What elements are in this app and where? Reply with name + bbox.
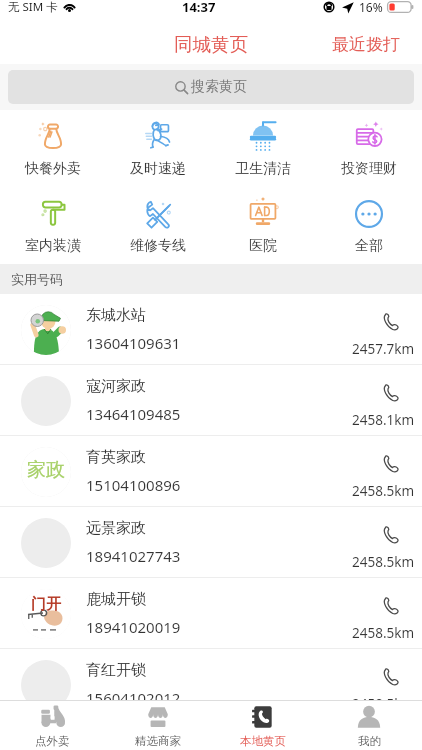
staticText: 室内装潢 [25, 237, 81, 255]
staticText: 无 SIM 卡 [8, 0, 58, 15]
staticText: 门开 [31, 595, 61, 614]
staticText: 实用号码 [11, 271, 63, 287]
staticText: 寇河家政 [86, 377, 146, 396]
staticText: 15604102012 [86, 688, 181, 708]
button[interactable]: 家政 [0, 436, 422, 506]
staticText: 育英家政 [86, 448, 146, 467]
staticText: 卫生清洁 [235, 160, 291, 178]
button[interactable]: 最近拨打 [320, 30, 422, 59]
button[interactable]: Call 东城水站 [350, 304, 422, 358]
button[interactable]: 同城黄页 [166, 31, 256, 58]
button[interactable]: Call 育红开锁 [350, 659, 422, 713]
staticText: 同城黄页 [174, 33, 248, 56]
button[interactable]: 医院 [210, 187, 316, 264]
staticText: 点外卖 [35, 734, 70, 748]
button[interactable]: 精选商家 [105, 701, 210, 750]
staticText: 13604109631 [86, 333, 181, 353]
button[interactable]: 我的 [316, 701, 422, 750]
button[interactable]: 快餐外卖 [0, 110, 105, 187]
staticText: 维修专线 [130, 237, 186, 255]
staticText: 18941027743 [86, 546, 181, 566]
staticText: 远景家政 [86, 519, 146, 538]
button[interactable]: 寇河家政 [0, 365, 422, 435]
staticText: 本地黄页 [240, 734, 286, 748]
button[interactable]: 育红开锁 [0, 649, 422, 719]
staticText: 2458.5km [352, 695, 415, 713]
button[interactable]: 维修专线 [105, 187, 210, 264]
button[interactable]: 点外卖 [0, 701, 105, 750]
button[interactable]: 及时速递 [105, 110, 210, 187]
staticText: 投资理财 [341, 160, 397, 178]
staticText: 15104100896 [86, 475, 181, 495]
staticText: 最近拨打 [332, 34, 400, 55]
staticText: 东城水站 [86, 306, 146, 325]
staticText: 2457.7km [352, 340, 415, 358]
staticText: 快餐外卖 [25, 160, 81, 178]
staticText: 搜索黄页 [191, 78, 247, 96]
staticText: 我的 [358, 734, 381, 748]
button[interactable]: Call 寇河家政 [350, 375, 422, 429]
staticText: 14:37 [182, 0, 216, 16]
button[interactable]: Call 鹿城开锁 [350, 588, 422, 642]
staticText: 全部 [355, 237, 383, 255]
staticText: 医院 [249, 237, 277, 255]
staticText: 2458.5km [352, 553, 415, 571]
button[interactable]: 远景家政 [0, 507, 422, 577]
staticText: 18941020019 [86, 617, 181, 637]
staticText: 2458.1km [352, 411, 415, 429]
button[interactable]: 室内装潢 [0, 187, 105, 264]
button[interactable]: 搜索黄页 [8, 70, 414, 104]
staticText: 育红开锁 [86, 661, 146, 680]
button[interactable]: Call 育英家政 [350, 446, 422, 500]
staticText: 鹿城开锁 [86, 590, 146, 609]
staticText: 2458.5km [352, 482, 415, 500]
staticText: 精选商家 [135, 734, 181, 748]
staticText: 家政 [27, 458, 65, 482]
button[interactable]: Call 远景家政 [350, 517, 422, 571]
button[interactable]: 全部 [316, 187, 422, 264]
button[interactable]: 门开 [0, 578, 422, 648]
button[interactable]: 卫生清洁 [210, 110, 316, 187]
staticText: 16% [359, 0, 383, 15]
button[interactable]: 东城水站 [0, 294, 422, 364]
staticText: 13464109485 [86, 404, 181, 424]
staticText: 及时速递 [130, 160, 186, 178]
staticText: 2458.5km [352, 624, 415, 642]
button[interactable]: 投资理财 [316, 110, 422, 187]
button[interactable]: 本地黄页 [210, 701, 316, 750]
